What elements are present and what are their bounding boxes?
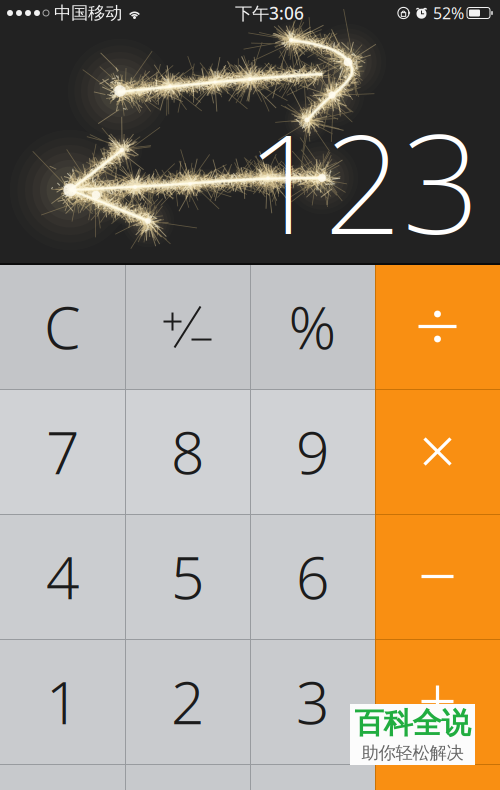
button[interactable]: 0 xyxy=(0,764,125,790)
button[interactable]: Decimal Point xyxy=(250,764,375,790)
staticText: 4 xyxy=(46,537,79,615)
button[interactable]: 1 xyxy=(0,639,125,764)
staticText: 1 xyxy=(46,662,79,740)
button[interactable]: 9 xyxy=(250,389,375,514)
staticText: 6 xyxy=(296,537,329,615)
staticText: % xyxy=(288,287,336,365)
button[interactable]: 2 xyxy=(125,639,250,764)
staticText: 123 xyxy=(246,90,480,272)
button[interactable]: Subtract xyxy=(375,514,500,639)
staticText: 8 xyxy=(171,412,204,490)
button[interactable]: 4 xyxy=(0,514,125,639)
button[interactable]: Clear xyxy=(0,264,125,389)
staticText: 助你轻松解决 xyxy=(361,742,463,764)
button[interactable]: Divide xyxy=(375,264,500,389)
staticText: 9 xyxy=(296,412,329,490)
staticText: 7 xyxy=(46,412,79,490)
button[interactable]: Plus Minus xyxy=(125,264,250,389)
staticText: C xyxy=(44,287,81,365)
button[interactable]: 6 xyxy=(250,514,375,639)
staticText: 下午3:06 xyxy=(235,1,304,24)
button[interactable]: Add xyxy=(375,639,500,764)
staticText: 5 xyxy=(171,537,204,615)
staticText: 中国移动 xyxy=(54,2,122,24)
button[interactable]: 8 xyxy=(125,389,250,514)
button[interactable]: Percent xyxy=(250,264,375,389)
button[interactable]: Multiply xyxy=(375,389,500,514)
staticText: 3 xyxy=(296,662,329,740)
staticText: 百科全说 xyxy=(354,705,470,741)
button[interactable] xyxy=(125,764,250,790)
staticText: 52% xyxy=(433,2,464,24)
staticText: 2 xyxy=(171,662,204,740)
button[interactable]: 3 xyxy=(250,639,375,764)
button[interactable]: 5 xyxy=(125,514,250,639)
button[interactable]: Equals xyxy=(375,764,500,790)
button[interactable]: 7 xyxy=(0,389,125,514)
